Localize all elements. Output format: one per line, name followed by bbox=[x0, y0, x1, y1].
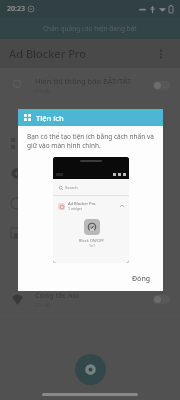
staticText: 1 widget bbox=[68, 206, 83, 211]
staticText: Block ON/OFF bbox=[79, 238, 104, 243]
button[interactable]: Cài bbox=[0, 188, 180, 218]
button[interactable]: Đóng bbox=[120, 267, 163, 291]
button[interactable] bbox=[0, 218, 180, 248]
button[interactable]: Công tắc nổi bbox=[0, 282, 180, 316]
staticText: 1x1 bbox=[89, 243, 95, 248]
button[interactable]: Hiển thị thông báo BẬT/TẮT bbox=[0, 68, 180, 102]
button[interactable] bbox=[0, 158, 180, 188]
staticText: Ad Blocker Pro bbox=[9, 46, 87, 61]
staticText: Hiển thị thông báo BẬT/TẮT bbox=[35, 76, 132, 86]
button[interactable]: Toggle Công tắc nổi bbox=[153, 295, 170, 304]
staticText: Ad Blocker Pro bbox=[68, 201, 96, 206]
staticText: Bạn có thể tạo tiện ích bằng cách nhấn v… bbox=[27, 132, 154, 150]
staticText: Đóng bbox=[132, 274, 151, 284]
staticText: Search bbox=[65, 185, 78, 190]
staticText: Công tắc nổi bbox=[35, 290, 80, 300]
staticText: Lối bbox=[33, 138, 43, 148]
button[interactable]: Toggle Hiển thị thông báo BẬT/TẮT bbox=[153, 81, 170, 90]
staticText: Chặn quảng cáo hiện đang bật bbox=[43, 24, 137, 33]
staticText: Tiện ích bbox=[36, 113, 64, 123]
staticText: 20:23 bbox=[7, 4, 25, 14]
button[interactable]: Lối bbox=[0, 128, 180, 158]
button[interactable]: Toggle blocking bbox=[75, 354, 106, 385]
